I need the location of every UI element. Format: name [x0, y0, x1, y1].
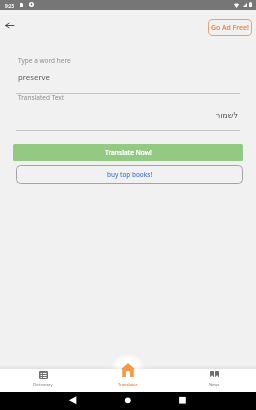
staticText: preserve [18, 72, 50, 83]
staticText: Dictionary [33, 382, 53, 388]
staticText: buy top books! [107, 170, 153, 179]
staticText: Translator [118, 382, 138, 388]
staticText: Translate Now! [105, 148, 152, 157]
button[interactable]: News [186, 362, 242, 392]
button[interactable]: buy top books! [16, 165, 243, 184]
button[interactable]: Translator [100, 362, 156, 392]
staticText: Go Ad Free! [211, 23, 249, 32]
button[interactable]: Back [0, 16, 18, 34]
button[interactable]: Translate Now! [13, 144, 243, 161]
staticText: Type a word here [18, 56, 71, 65]
staticText: 9:25 [5, 3, 15, 9]
staticText: Translated Text [18, 93, 65, 102]
staticText: News [209, 382, 220, 388]
button[interactable]: Go Ad Free! [208, 19, 252, 36]
button[interactable]: Dictionary [15, 362, 71, 392]
staticText: לשמור [16, 111, 238, 120]
